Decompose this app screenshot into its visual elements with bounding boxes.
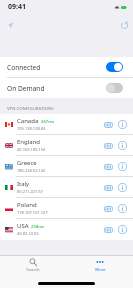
button[interactable]: Signal strength <box>103 181 114 194</box>
staticText: VPN CONFIGURATIONS <box>7 105 54 111</box>
button[interactable]: Canada <box>0 114 133 135</box>
staticText: On Demand <box>7 84 45 93</box>
button[interactable]: VPN status <box>3 18 17 32</box>
button[interactable]: England <box>0 135 133 156</box>
staticText: Canada <box>17 117 39 125</box>
button[interactable]: Info <box>116 139 129 152</box>
button[interactable]: Info <box>116 202 129 215</box>
button[interactable]: More <box>77 256 123 275</box>
button[interactable]: Info <box>116 160 129 173</box>
button[interactable]: Greece <box>0 156 133 177</box>
staticText: 185.234.52.142 <box>17 168 46 173</box>
staticText: 80.211.227.57 <box>17 189 44 194</box>
staticText: Italy <box>17 180 30 188</box>
button[interactable]: Connected <box>0 57 133 77</box>
button[interactable]: Search <box>10 256 56 275</box>
button[interactable]: Signal strength <box>103 118 114 131</box>
button[interactable]: Info <box>116 223 129 236</box>
button[interactable]: Signal strength <box>103 223 114 236</box>
button[interactable]: Refresh <box>117 18 131 32</box>
button[interactable]: Poland <box>0 198 133 219</box>
button[interactable]: Info <box>116 118 129 131</box>
staticText: 178.107.101.147 <box>17 210 48 215</box>
staticText: Greece <box>17 159 37 167</box>
button[interactable]: Signal strength <box>103 202 114 215</box>
staticText: 258ms <box>31 224 45 230</box>
staticText: USA <box>17 222 29 230</box>
button[interactable]: Signal strength <box>103 160 114 173</box>
button[interactable]: Info <box>116 181 129 194</box>
staticText: 45.163.185.154 <box>17 147 46 152</box>
staticText: 267ms <box>41 119 55 125</box>
staticText: Search <box>26 267 40 273</box>
staticText: Connected <box>7 63 41 72</box>
staticText: 09:41 <box>8 2 26 12</box>
button[interactable]: On Demand <box>0 78 133 98</box>
staticText: More <box>95 267 106 273</box>
staticText: 105.138.138.83 <box>17 126 46 131</box>
staticText: England <box>17 138 41 146</box>
button[interactable]: USA <box>0 219 133 240</box>
button[interactable]: Italy <box>0 177 133 198</box>
staticText: Poland <box>17 201 37 209</box>
staticText: 40.83.14.53 <box>17 231 39 236</box>
button[interactable]: Signal strength <box>103 139 114 152</box>
